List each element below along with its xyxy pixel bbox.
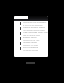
staticText: Tap to read it now xyxy=(23,34,40,36)
staticText: All items synced xyxy=(23,49,39,51)
staticText: Version 4.2 now xyxy=(23,44,38,46)
staticText: New message from Alex xyxy=(23,31,48,34)
button[interactable]: Morning run summary xyxy=(14,21,48,26)
staticText: Battery saver xyxy=(23,36,37,39)
staticText: Turned on at 15% xyxy=(23,39,40,41)
button[interactable]: Weekly activity report xyxy=(14,26,48,31)
button[interactable]: New message from Alex xyxy=(14,31,48,36)
button[interactable]: Battery saver xyxy=(14,36,48,41)
staticText: You moved more today xyxy=(23,29,45,31)
staticText: Sync complete xyxy=(23,46,38,49)
button[interactable] xyxy=(14,16,48,21)
button[interactable]: Sync complete xyxy=(14,46,48,51)
staticText: 5.2 km in 28 minutes xyxy=(23,24,43,26)
staticText: Update ready xyxy=(23,41,37,44)
button[interactable]: Update ready xyxy=(14,41,48,46)
staticText: Weekly activity report xyxy=(23,26,46,29)
staticText: Morning run summary xyxy=(23,21,47,24)
